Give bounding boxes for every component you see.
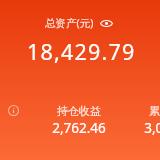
staticText: 18,429.79 [27,37,136,63]
staticText: 持仓收益 [57,104,101,118]
staticText: 2,762.46 [52,119,106,137]
staticText: 总资产(元) [45,16,94,30]
staticText: 3,084.12 [144,119,160,137]
staticText: 累计收益 [149,104,160,118]
button[interactable]: Toggle balance visibility [98,15,114,31]
button[interactable]: 持仓收益 [33,104,125,142]
button[interactable]: 累计收益 [125,104,160,142]
button[interactable]: Info [8,105,19,116]
